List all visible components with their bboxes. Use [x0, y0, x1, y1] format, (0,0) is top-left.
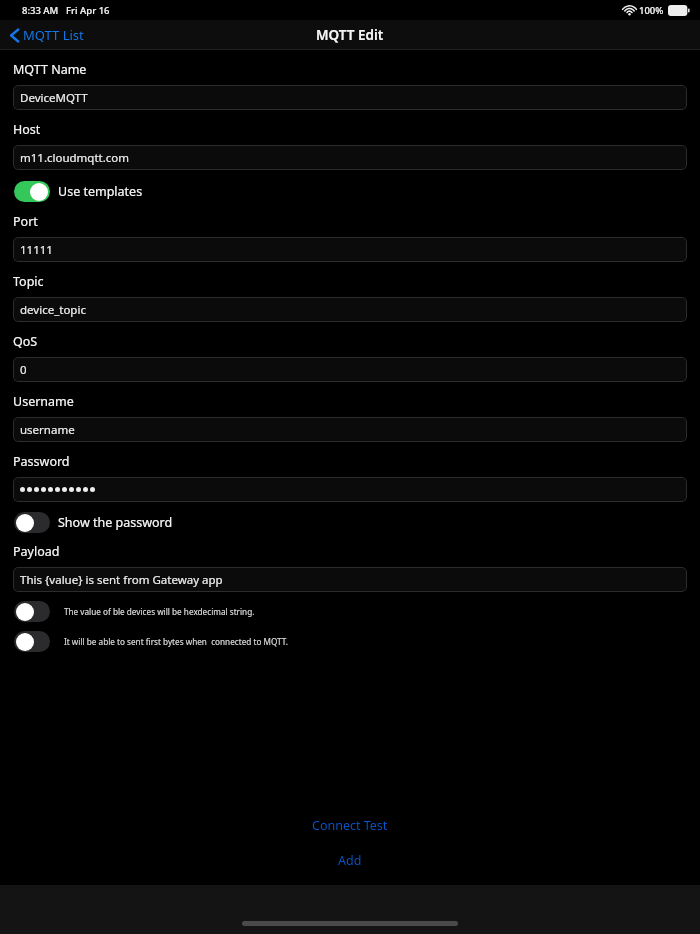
staticText: Host — [13, 121, 41, 138]
staticText: Password — [13, 453, 70, 470]
button[interactable]: It will be able to sent first bytes when… — [0, 628, 700, 655]
staticText: 11111 — [20, 242, 53, 258]
staticText: This {value} is sent from Gateway app — [20, 572, 223, 588]
staticText: 100% — [639, 4, 664, 17]
button[interactable]: 11111 — [13, 237, 687, 262]
button[interactable]: DeviceMQTT — [13, 85, 687, 110]
button[interactable]: m11.cloudmqtt.com — [13, 145, 687, 170]
staticText: Add — [338, 852, 362, 869]
button[interactable] — [13, 477, 687, 502]
staticText: QoS — [13, 333, 38, 350]
button[interactable]: The value of ble devices will be hexdeci… — [0, 598, 700, 625]
other: It will be able to sent first bytes when… — [14, 631, 50, 652]
staticText: MQTT Name — [13, 61, 87, 78]
staticText: MQTT Edit — [316, 26, 384, 44]
staticText: Port — [13, 213, 38, 230]
button[interactable]: Use templates — [0, 178, 700, 205]
button[interactable]: Connect Test — [0, 813, 700, 838]
button[interactable]: Show the password — [0, 509, 700, 536]
button[interactable]: This {value} is sent from Gateway app — [13, 567, 687, 592]
staticText: m11.cloudmqtt.com — [20, 150, 130, 166]
staticText: username — [20, 422, 75, 438]
staticText: The value of ble devices will be hexdeci… — [64, 606, 255, 617]
staticText: Topic — [13, 273, 44, 290]
button[interactable]: 0 — [13, 357, 687, 382]
staticText: MQTT List — [23, 26, 84, 44]
staticText: DeviceMQTT — [20, 90, 88, 106]
other: Use templates — [14, 181, 50, 202]
other: The value of ble devices will be hexdeci… — [14, 601, 50, 622]
staticText: device_topic — [20, 302, 86, 318]
staticText: 0 — [20, 362, 27, 378]
staticText: Show the password — [58, 514, 173, 531]
staticText: Connect Test — [312, 817, 388, 834]
staticText: Fri Apr 16 — [66, 4, 110, 17]
staticText: Username — [13, 393, 74, 410]
button[interactable]: device_topic — [13, 297, 687, 322]
staticText: Payload — [13, 543, 60, 560]
button[interactable]: MQTT List — [0, 22, 92, 48]
staticText: 8:33 AM — [22, 4, 59, 17]
staticText: It will be able to sent first bytes when… — [64, 636, 289, 647]
button[interactable]: Add — [0, 848, 700, 873]
other: Show the password — [14, 512, 50, 533]
button[interactable]: username — [13, 417, 687, 442]
staticText: Use templates — [58, 183, 143, 200]
